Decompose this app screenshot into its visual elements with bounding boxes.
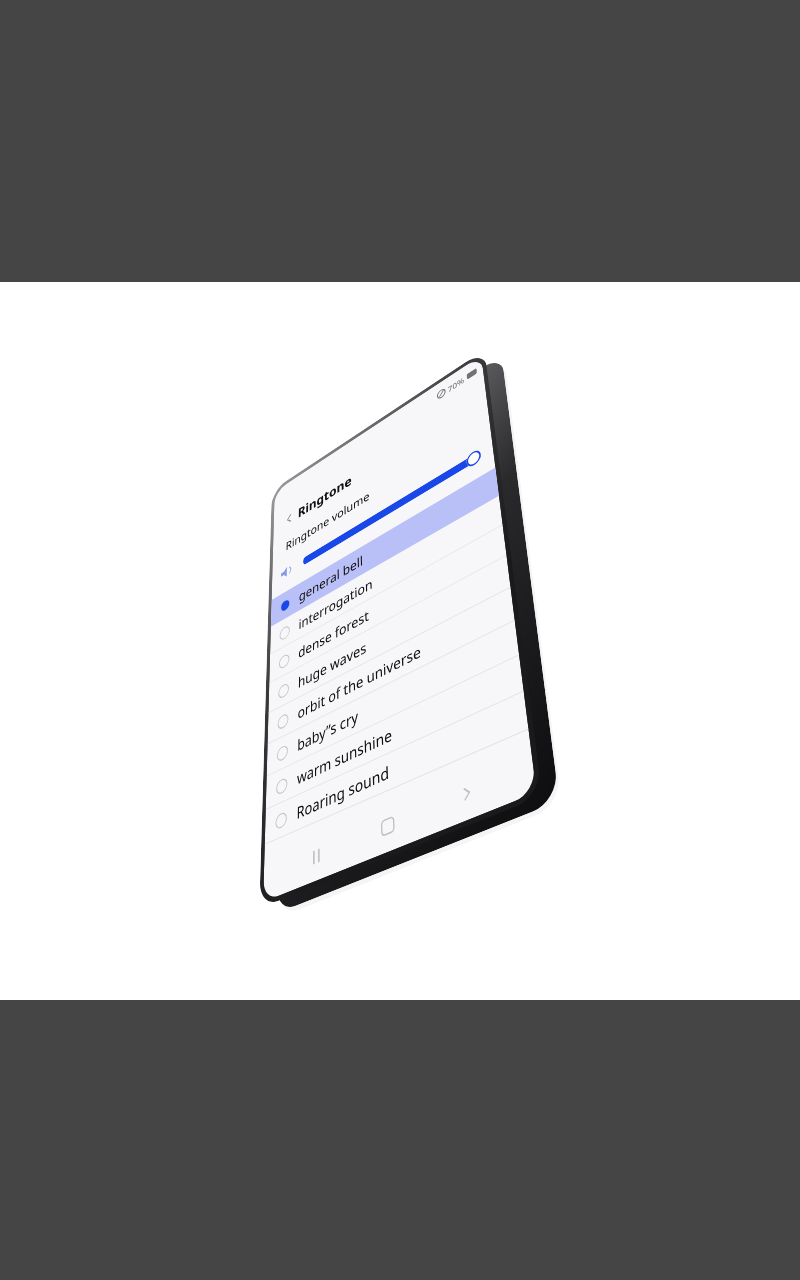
staticText: Ringtone [298, 470, 352, 521]
button[interactable]: orbit of the universe [267, 587, 515, 744]
staticText: 70% [447, 374, 465, 395]
button[interactable]: Home [370, 798, 406, 854]
button[interactable]: general bell [271, 467, 499, 627]
staticText: interrogation [298, 574, 373, 633]
staticText: huge waves [298, 637, 367, 692]
staticText: general bell [299, 551, 363, 606]
button[interactable]: Back [447, 764, 488, 823]
other: Back [284, 511, 294, 527]
staticText: Roaring sound [296, 760, 390, 824]
button[interactable]: interrogation [270, 496, 503, 655]
button[interactable]: huge waves [268, 556, 511, 713]
button[interactable]: dense forest [269, 525, 506, 683]
button[interactable]: Roaring sound [265, 691, 528, 845]
staticText: Ringtone volume [286, 487, 370, 554]
button[interactable]: baby”s cry [267, 621, 519, 777]
staticText: orbit of the universe [298, 640, 422, 723]
staticText: dense forest [298, 605, 369, 662]
button[interactable]: Recents [300, 830, 332, 883]
button[interactable]: Back [284, 378, 488, 537]
staticText: warm sunshine [297, 723, 393, 789]
button[interactable]: warm sunshine [266, 655, 524, 810]
staticText: baby”s cry [297, 705, 359, 756]
other: Volume [281, 561, 293, 582]
